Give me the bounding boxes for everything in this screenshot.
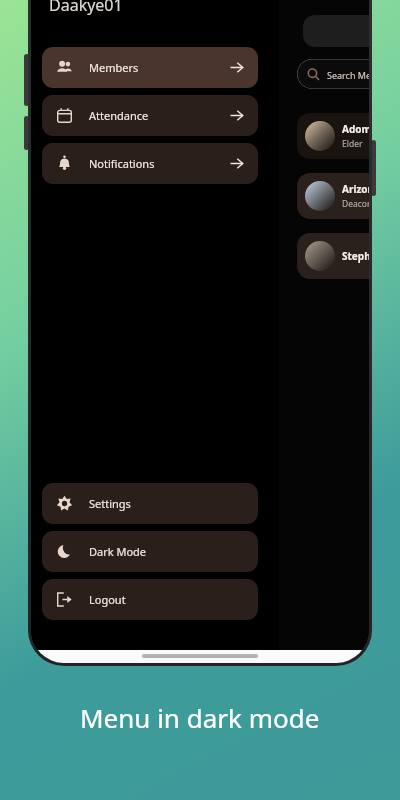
staticText: Arizona Cole [342, 182, 369, 196]
staticText: Logout [89, 592, 126, 607]
staticText: Elder [342, 138, 363, 150]
button[interactable]: Notifications [42, 143, 258, 184]
staticText: Adom Mensah [342, 122, 369, 136]
button[interactable]: Arizona Cole [297, 173, 369, 219]
staticText: Members [89, 60, 139, 75]
button[interactable]: Attendance [42, 95, 258, 136]
button[interactable]: Stephen Amo [297, 233, 369, 279]
staticText: Menu in dark mode [80, 700, 320, 735]
staticText: Dark Mode [89, 544, 147, 559]
button[interactable]: Adom Mensah [297, 113, 369, 159]
staticText: Notifications [89, 156, 155, 171]
button[interactable]: Dark Mode [42, 531, 258, 572]
staticText: Daakye01 [49, 0, 123, 16]
staticText: Search Members [327, 69, 369, 81]
staticText: Deaconess [342, 198, 369, 210]
button[interactable]: Logout [42, 579, 258, 620]
button[interactable]: Members [42, 47, 258, 88]
button[interactable]: Settings [42, 483, 258, 524]
staticText: Stephen Amo [342, 249, 369, 263]
button[interactable]: Search Members [297, 59, 369, 89]
staticText: Settings [89, 496, 131, 511]
staticText: Attendance [89, 108, 149, 123]
